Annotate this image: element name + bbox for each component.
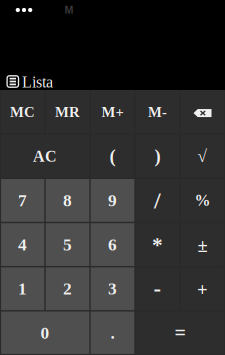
button[interactable]: =: [135, 311, 225, 355]
button[interactable]: MC: [0, 90, 45, 134]
staticText: +: [197, 279, 208, 300]
staticText: ): [154, 146, 160, 167]
button[interactable]: (: [90, 134, 135, 178]
button[interactable]: 1: [0, 267, 45, 311]
button[interactable]: 4: [0, 222, 45, 267]
staticText: MC: [10, 104, 35, 120]
button[interactable]: 5: [45, 222, 90, 267]
staticText: 2: [63, 279, 72, 298]
staticText: M-: [148, 104, 167, 120]
button[interactable]: 2: [45, 267, 90, 311]
staticText: 8: [63, 191, 72, 210]
staticText: M: [64, 4, 73, 16]
button[interactable]: Menu: [0, 1, 32, 19]
button[interactable]: 3: [90, 267, 135, 311]
button[interactable]: 7: [0, 178, 45, 222]
staticText: 3: [108, 279, 117, 298]
staticText: 9: [108, 191, 117, 210]
button[interactable]: 8: [45, 178, 90, 222]
staticText: 0: [40, 323, 49, 342]
button[interactable]: .: [90, 311, 135, 355]
staticText: .: [110, 323, 114, 342]
button[interactable]: 9: [90, 178, 135, 222]
button[interactable]: +: [180, 267, 225, 311]
staticText: AC: [33, 147, 57, 165]
staticText: 7: [18, 191, 27, 210]
button[interactable]: M+: [90, 90, 135, 134]
staticText: -: [153, 276, 161, 301]
staticText: =: [174, 322, 185, 344]
staticText: 5: [63, 235, 72, 254]
button[interactable]: -: [135, 267, 180, 311]
button[interactable]: AC: [0, 134, 90, 178]
staticText: 4: [18, 235, 27, 254]
staticText: MR: [55, 104, 80, 120]
staticText: 1: [18, 279, 27, 298]
button[interactable]: M-: [135, 90, 180, 134]
button[interactable]: /: [135, 178, 180, 222]
button[interactable]: %: [180, 178, 225, 222]
button[interactable]: ): [135, 134, 180, 178]
staticText: 6: [108, 235, 117, 254]
staticText: √: [197, 147, 207, 166]
staticText: M+: [101, 104, 123, 120]
staticText: *: [152, 233, 163, 257]
button[interactable]: Delete: [180, 90, 225, 134]
button[interactable]: MR: [45, 90, 90, 134]
staticText: /: [154, 187, 161, 214]
staticText: Lista: [22, 73, 53, 91]
button[interactable]: √: [180, 134, 225, 178]
button[interactable]: 0: [0, 311, 90, 355]
button[interactable]: 6: [90, 222, 135, 267]
staticText: (: [109, 146, 115, 167]
staticText: %: [194, 192, 210, 209]
button[interactable]: *: [135, 222, 180, 267]
staticText: ±: [197, 235, 207, 256]
button[interactable]: ±: [180, 222, 225, 267]
button[interactable]: Lista: [0, 73, 61, 90]
